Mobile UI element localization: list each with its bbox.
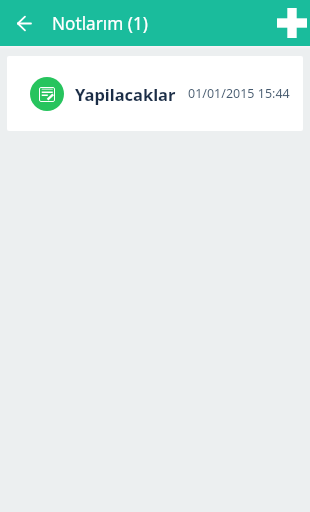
staticText: Yapilacaklar [75,83,176,105]
staticText: Notlarım (1) [52,12,148,35]
button[interactable]: Yapilacaklar [7,56,303,131]
button[interactable]: Back [8,7,40,39]
staticText: 01/01/2015 15:44 [188,85,290,102]
button[interactable]: Add note [272,3,310,43]
